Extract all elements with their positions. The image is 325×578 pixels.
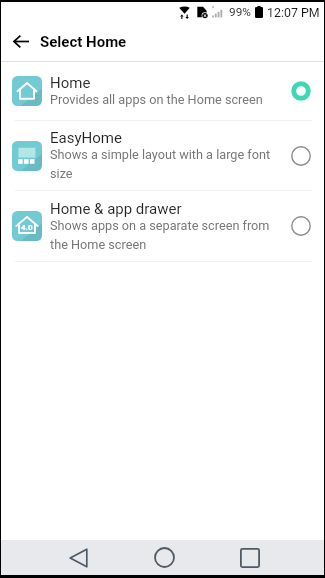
staticText: Provides all apps on the Home screen [50,92,263,107]
button[interactable]: Home [1,62,324,120]
button[interactable]: Back [56,540,100,575]
staticText: 4.0 [21,223,33,232]
button[interactable]: Recent apps [228,540,272,575]
staticText: Select Home [40,33,127,51]
staticText: Home [50,74,91,92]
button[interactable]: EasyHome [1,121,324,190]
button[interactable]: Home [142,540,186,575]
staticText: Shows apps on a separate screen from the… [50,218,285,252]
staticText: Shows a simple layout with a large font … [50,147,285,181]
staticText: Home & app drawer [50,200,182,218]
staticText: EasyHome [50,129,122,147]
button[interactable]: Back [1,22,40,61]
button[interactable]: 4.0 [1,191,324,261]
staticText: 99% [229,5,251,19]
staticText: 12:07 PM [267,5,320,20]
